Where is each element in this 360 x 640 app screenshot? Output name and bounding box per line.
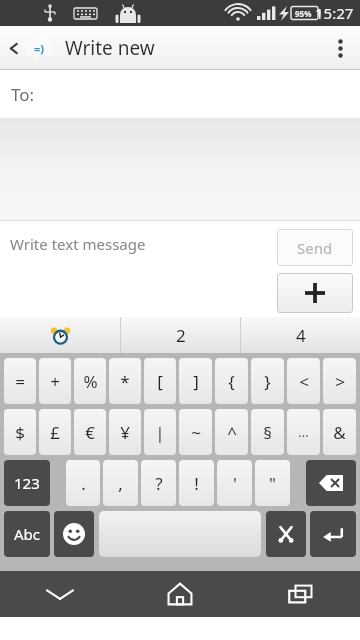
button[interactable]: * <box>109 358 141 404</box>
button[interactable]: ^ <box>215 409 248 455</box>
staticText: > <box>335 370 345 393</box>
staticText: + <box>50 370 60 393</box>
staticText: " <box>269 472 276 495</box>
button[interactable]: Hide keyboard <box>0 571 120 617</box>
button[interactable]: . <box>66 460 100 506</box>
button[interactable]: Back <box>0 26 59 70</box>
button[interactable]: % <box>74 358 106 404</box>
staticText: . <box>81 472 86 495</box>
staticText: ~ <box>191 421 201 444</box>
button[interactable]: ! <box>179 460 214 506</box>
staticText: ' <box>233 472 237 495</box>
staticText: ? <box>155 472 163 495</box>
staticText: < <box>299 370 309 393</box>
button[interactable]: } <box>251 358 284 404</box>
button[interactable]: Recent apps <box>240 571 360 617</box>
staticText: $ <box>15 421 25 444</box>
staticText: ] <box>193 370 199 393</box>
staticText: , <box>118 472 123 495</box>
button[interactable]: ] <box>179 358 212 404</box>
button[interactable]: Abc <box>4 511 50 557</box>
button[interactable]: Alarm clock emoji suggestion <box>0 317 120 353</box>
button[interactable]: & <box>323 409 356 455</box>
staticText: § <box>263 421 272 444</box>
button[interactable]: { <box>215 358 248 404</box>
button[interactable]: [ <box>144 358 176 404</box>
staticText: ¥ <box>120 421 130 444</box>
button[interactable]: 4 <box>241 317 360 353</box>
button[interactable]: Add attachment <box>277 273 353 313</box>
button[interactable]: Space <box>99 511 261 557</box>
button[interactable]: Send <box>277 229 353 266</box>
staticText: Send <box>297 238 333 258</box>
staticText: & <box>333 421 346 444</box>
button[interactable]: " <box>255 460 290 506</box>
button[interactable]: 2 <box>121 317 240 353</box>
staticText: 15:27 <box>315 3 354 23</box>
button[interactable]: § <box>251 409 284 455</box>
staticText: £ <box>50 421 60 444</box>
button[interactable]: Backspace <box>306 460 356 506</box>
button[interactable]: > <box>323 358 356 404</box>
button[interactable]: Home <box>120 571 240 617</box>
staticText: 95% <box>295 8 312 19</box>
staticText: 123 <box>14 473 40 493</box>
staticText: * <box>120 370 130 393</box>
staticText: Write text message <box>10 234 146 254</box>
staticText: ! <box>194 472 199 495</box>
button[interactable]: More options <box>320 26 360 70</box>
staticText: } <box>264 370 271 393</box>
staticText: = <box>15 370 25 393</box>
button[interactable]: ? <box>141 460 176 506</box>
button[interactable]: 123 <box>4 460 50 506</box>
staticText: ... <box>298 423 309 441</box>
button[interactable]: < <box>287 358 320 404</box>
staticText: ^ <box>227 421 237 444</box>
staticText: | <box>155 421 165 444</box>
staticText: { <box>228 370 235 393</box>
staticText: 4 <box>296 324 306 347</box>
button[interactable]: ~ <box>179 409 212 455</box>
button[interactable]: | <box>144 409 176 455</box>
button[interactable]: ... <box>287 409 320 455</box>
button[interactable]: ¥ <box>109 409 141 455</box>
button[interactable]: $ <box>4 409 36 455</box>
button[interactable]: = <box>4 358 36 404</box>
staticText: Abc <box>14 524 41 544</box>
button[interactable]: Enter <box>310 511 356 557</box>
staticText: =) <box>34 41 45 56</box>
button[interactable]: £ <box>39 409 71 455</box>
staticText: % <box>83 370 98 393</box>
button[interactable]: Keyboard tools <box>266 511 306 557</box>
staticText: Write new <box>65 35 155 61</box>
staticText: To: <box>11 83 35 106</box>
button[interactable]: Emoji <box>54 511 94 557</box>
staticText: 2 <box>176 324 186 347</box>
button[interactable]: , <box>103 460 138 506</box>
staticText: € <box>85 421 95 444</box>
button[interactable]: ' <box>217 460 252 506</box>
staticText: [ <box>157 370 163 393</box>
button[interactable]: € <box>74 409 106 455</box>
button[interactable]: + <box>39 358 71 404</box>
